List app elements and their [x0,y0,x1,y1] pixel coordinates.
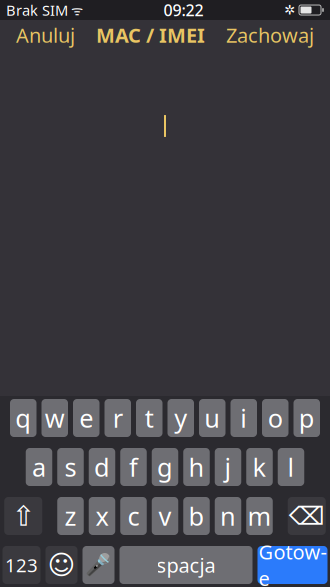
button[interactable]: o [262,399,288,437]
button[interactable]: 123 [2,546,40,584]
button[interactable]: Shift [4,497,42,535]
button[interactable]: p [293,399,320,437]
button[interactable]: y [167,399,194,437]
staticText: q [15,401,31,435]
button[interactable]: h [183,448,210,486]
staticText: ✲ [284,2,295,17]
button[interactable]: i [230,399,257,437]
button[interactable]: Anuluj [6,16,85,54]
staticText: u [204,401,220,435]
button[interactable]: Zachowaj [216,16,324,54]
button[interactable]: d [89,448,115,486]
staticText: l [287,450,294,484]
button[interactable]: f [120,448,147,486]
staticText: Gotowe [258,538,326,587]
staticText: v [158,499,171,533]
button[interactable]: z [57,497,84,535]
button[interactable]: k [246,448,273,486]
staticText: b [188,499,204,533]
staticText: Anuluj [16,22,75,48]
staticText: 09:22 [163,0,203,21]
staticText: i [240,401,247,435]
staticText: o [268,401,283,435]
staticText: n [220,499,236,533]
staticText: ⌫ [289,502,325,530]
button[interactable]: Dictation [82,546,114,584]
button[interactable]: w [41,399,68,437]
button[interactable]: Emoji [45,546,77,584]
button[interactable]: j [215,448,241,486]
button[interactable]: m [246,497,273,535]
staticText: c [127,499,139,533]
button[interactable]: n [215,497,241,535]
button[interactable]: Gotowe [257,546,327,584]
button[interactable]: Delete [288,497,326,535]
staticText: spacja [156,552,215,578]
staticText: z [64,499,76,533]
staticText: s [64,450,76,484]
staticText: m [247,499,271,533]
staticText: y [174,401,187,435]
staticText: g [157,450,173,484]
button[interactable]: u [199,399,225,437]
staticText: ⇧ [12,500,35,532]
button[interactable]: e [73,399,99,437]
staticText: r [113,401,123,435]
staticText: d [94,450,110,484]
staticText: k [252,450,266,484]
button[interactable]: t [136,399,162,437]
staticText: x [95,499,108,533]
button[interactable]: x [89,497,115,535]
button[interactable]: r [104,399,131,437]
staticText: ᯤ [68,1,83,19]
staticText: t [145,401,154,435]
staticText: h [188,450,204,484]
button[interactable]: b [183,497,210,535]
button[interactable]: c [120,497,147,535]
button[interactable]: g [152,448,178,486]
staticText: e [79,401,93,435]
button[interactable]: s [57,448,84,486]
staticText: Zachowaj [226,22,314,48]
staticText: MAC / IMEI [96,22,205,48]
staticText: p [299,401,315,435]
staticText: 123 [5,553,38,577]
staticText: 🎤 [85,553,112,577]
staticText: ☺ [47,550,75,580]
staticText: w [45,401,65,435]
button[interactable]: l [278,448,304,486]
staticText: f [129,450,138,484]
staticText: j [224,450,231,484]
staticText: Brak SIM [6,0,68,20]
button[interactable]: a [26,448,52,486]
button[interactable]: q [10,399,36,437]
button[interactable]: v [152,497,178,535]
staticText: a [32,450,46,484]
button[interactable]: spacja [119,546,252,584]
